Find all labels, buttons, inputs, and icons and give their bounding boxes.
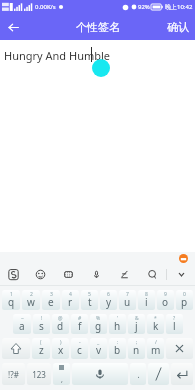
staticText: &: [135, 315, 139, 322]
staticText: v: [96, 343, 102, 357]
button[interactable]: ): [52, 338, 69, 359]
staticText: 1: [10, 291, 13, 298]
staticText: o: [162, 295, 169, 309]
button[interactable]: -: [71, 338, 88, 359]
staticText: 晚上10:42: [165, 3, 193, 11]
staticText: .: [137, 369, 140, 380]
staticText: /: [155, 339, 157, 346]
button[interactable]: Enter: [171, 363, 193, 385]
staticText: 0.00K/s: [35, 3, 56, 11]
staticText: ): [60, 339, 62, 346]
staticText: :: [117, 339, 119, 346]
staticText: t: [88, 295, 92, 309]
staticText: p: [181, 295, 188, 309]
staticText: 个性签名: [76, 20, 120, 34]
button[interactable]: %: [90, 314, 107, 334]
button[interactable]: 5: [81, 290, 98, 310]
button[interactable]: &: [128, 314, 145, 334]
staticText: %: [96, 315, 101, 322]
staticText: i: [145, 295, 148, 309]
staticText: c: [77, 343, 82, 357]
button[interactable]: (: [32, 338, 50, 359]
button[interactable]: ': [109, 314, 126, 334]
button[interactable]: ~: [13, 314, 31, 334]
staticText: b: [114, 343, 121, 357]
button[interactable]: 8: [138, 290, 155, 310]
button[interactable]: Shift: [2, 338, 30, 359]
staticText: ;: [136, 339, 138, 346]
staticText: -: [79, 339, 81, 346]
staticText: ,: [61, 375, 63, 385]
staticText: x: [58, 343, 64, 357]
button[interactable]: Numeric keypad: [54, 264, 82, 285]
button[interactable]: Chinese English toggle: [148, 363, 169, 385]
staticText: e: [48, 295, 54, 309]
button[interactable]: Handwriting: [110, 264, 138, 285]
staticText: 3: [50, 291, 53, 298]
button[interactable]: !: [33, 314, 50, 334]
staticText: 0: [183, 291, 186, 298]
button[interactable]: /: [147, 338, 164, 359]
button[interactable]: ;: [128, 338, 145, 359]
staticText: u: [124, 295, 131, 309]
staticText: z: [39, 343, 44, 357]
staticText: 2: [30, 291, 33, 298]
button[interactable]: 9: [157, 290, 174, 310]
staticText: w: [27, 295, 35, 309]
staticText: 5: [88, 291, 91, 298]
staticText: n: [133, 343, 140, 357]
staticText: ?: [173, 315, 176, 322]
button[interactable]: 1: [2, 290, 20, 310]
staticText: r: [68, 295, 73, 309]
staticText: f: [78, 319, 82, 333]
staticText: _: [97, 339, 100, 346]
staticText: ': [117, 315, 119, 322]
staticText: !?#: [8, 369, 19, 380]
staticText: @: [58, 315, 63, 322]
staticText: m: [151, 343, 161, 357]
staticText: d: [57, 319, 64, 333]
staticText: 6: [107, 291, 110, 298]
button[interactable]: 3: [42, 290, 60, 310]
staticText: (: [40, 339, 42, 346]
staticText: 确认: [167, 20, 189, 34]
button[interactable]: ?: [166, 314, 183, 334]
staticText: ~: [21, 315, 24, 322]
button[interactable]: @: [52, 314, 69, 334]
button[interactable]: .: [130, 363, 146, 385]
button[interactable]: Back: [0, 14, 26, 40]
button[interactable]: Voice input: [82, 264, 110, 285]
button[interactable]: _: [90, 338, 107, 359]
button[interactable]: Sogou IME: [0, 264, 27, 285]
staticText: s: [39, 319, 44, 333]
button[interactable]: 4: [62, 290, 79, 310]
staticText: 9: [164, 291, 167, 298]
button[interactable]: *: [147, 314, 164, 334]
button[interactable]: 123: [27, 363, 51, 385]
staticText: 123: [32, 369, 46, 380]
staticText: 92%: [138, 3, 150, 11]
staticText: j: [135, 319, 138, 333]
button[interactable]: #: [71, 314, 88, 334]
button[interactable]: Comma: [53, 363, 70, 385]
staticText: 8: [145, 291, 148, 298]
staticText: !: [41, 315, 43, 322]
button[interactable]: Emoji: [27, 264, 54, 285]
staticText: k: [153, 319, 159, 333]
button[interactable]: 确认: [161, 16, 195, 38]
button[interactable]: Backspace: [166, 338, 193, 359]
button[interactable]: Space: [72, 363, 128, 385]
button[interactable]: 7: [119, 290, 136, 310]
staticText: g: [95, 319, 102, 333]
staticText: q: [8, 295, 15, 309]
button[interactable]: 2: [22, 290, 40, 310]
button[interactable]: 0: [176, 290, 193, 310]
button[interactable]: Hide keyboard: [167, 264, 195, 285]
staticText: Hungry And Humble: [4, 48, 111, 63]
staticText: l: [173, 319, 176, 333]
button[interactable]: Search: [138, 264, 166, 285]
button[interactable]: !?#: [2, 363, 25, 385]
button[interactable]: :: [109, 338, 126, 359]
button[interactable]: 6: [100, 290, 117, 310]
staticText: 7: [126, 291, 129, 298]
